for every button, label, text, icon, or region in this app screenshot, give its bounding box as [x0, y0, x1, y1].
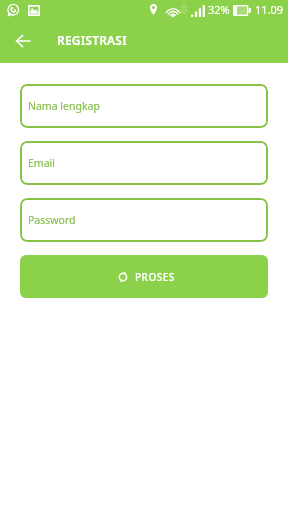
button[interactable]: Back: [11, 29, 35, 53]
button[interactable]: Email: [20, 141, 268, 185]
staticText: REGISTRASI: [57, 32, 127, 48]
button[interactable]: Nama lengkap: [20, 84, 268, 128]
staticText: PROSES: [135, 270, 175, 284]
staticText: 11.09: [255, 2, 284, 17]
staticText: Nama lengkap: [28, 99, 100, 113]
button[interactable]: PROSES: [20, 255, 268, 298]
button[interactable]: Password: [20, 198, 268, 242]
staticText: Password: [28, 213, 76, 227]
staticText: 32%: [208, 2, 230, 17]
staticText: Email: [28, 156, 55, 170]
